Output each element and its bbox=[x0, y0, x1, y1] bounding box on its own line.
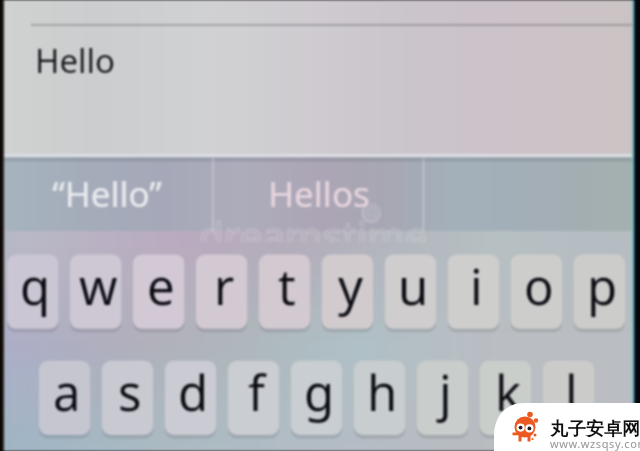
staticText: r bbox=[214, 253, 235, 320]
button[interactable]: r bbox=[196, 255, 248, 329]
staticText: t bbox=[278, 253, 296, 320]
staticText: p bbox=[587, 253, 618, 320]
staticText: k bbox=[495, 359, 522, 426]
button[interactable]: d bbox=[165, 361, 217, 435]
button[interactable]: f bbox=[228, 361, 280, 435]
button[interactable]: s bbox=[102, 361, 154, 435]
staticText: g bbox=[304, 359, 335, 426]
button[interactable]: u bbox=[385, 255, 437, 329]
staticText: Hello bbox=[35, 38, 116, 83]
button[interactable]: e bbox=[133, 255, 185, 329]
button[interactable]: o bbox=[511, 255, 563, 329]
button[interactable]: k bbox=[480, 361, 532, 435]
button[interactable]: Site watermark bbox=[494, 403, 640, 451]
staticText: f bbox=[248, 359, 265, 426]
button[interactable]: Hellos bbox=[213, 158, 424, 230]
button[interactable]: a bbox=[39, 361, 91, 435]
staticText: q bbox=[20, 253, 51, 320]
staticText: e bbox=[147, 253, 175, 320]
staticText: h bbox=[367, 359, 398, 426]
button[interactable]: i bbox=[448, 255, 500, 329]
staticText: l bbox=[565, 359, 578, 426]
button[interactable]: h bbox=[354, 361, 406, 435]
button[interactable]: w bbox=[70, 255, 122, 329]
button[interactable]: g bbox=[291, 361, 343, 435]
button[interactable]: p bbox=[574, 255, 626, 329]
button[interactable]: l bbox=[543, 361, 595, 435]
staticText: dreamstime bbox=[199, 208, 428, 242]
button[interactable]: “Hello” bbox=[3, 158, 211, 230]
staticText: u bbox=[398, 253, 429, 320]
staticText: y bbox=[338, 253, 363, 320]
staticText: Hellos bbox=[268, 170, 370, 218]
staticText: j bbox=[439, 359, 452, 426]
staticText: a bbox=[53, 359, 81, 426]
staticText: w bbox=[79, 253, 118, 320]
button[interactable]: t bbox=[259, 255, 311, 329]
button[interactable]: y bbox=[322, 255, 374, 329]
staticText: o bbox=[524, 253, 554, 320]
staticText: s bbox=[118, 359, 142, 426]
button[interactable]: Hello bbox=[35, 37, 155, 83]
staticText: “Hello” bbox=[52, 170, 162, 218]
staticText: d bbox=[178, 359, 209, 426]
staticText: 丸子安卓网 bbox=[550, 418, 640, 441]
button[interactable]: j bbox=[417, 361, 469, 435]
staticText: i bbox=[470, 253, 483, 320]
staticText: www.wzsqsy.com bbox=[550, 436, 640, 451]
button[interactable]: q bbox=[7, 255, 59, 329]
